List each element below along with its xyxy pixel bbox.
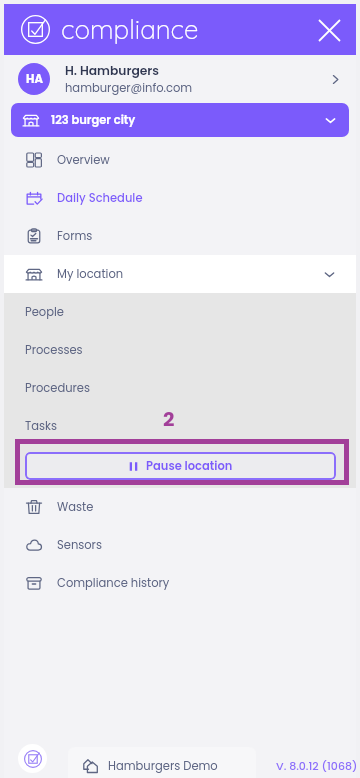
button[interactable]: My location — [4, 255, 356, 293]
staticText: Sensors — [57, 537, 102, 553]
staticText: Hamburgers Demo — [108, 758, 218, 774]
button[interactable]: Forms — [4, 217, 356, 255]
button[interactable]: People — [4, 293, 356, 331]
staticText: Overview — [57, 152, 110, 168]
staticText: HA — [26, 71, 43, 87]
button[interactable]: Close — [312, 13, 346, 47]
staticText: Processes — [25, 342, 83, 358]
staticText: Daily Schedule — [57, 190, 143, 206]
button[interactable]: Waste — [4, 488, 356, 526]
staticText: Pause location — [146, 458, 233, 474]
button[interactable]: Overview — [4, 141, 356, 179]
staticText: Procedures — [25, 380, 90, 396]
staticText: 123 burger city — [51, 112, 136, 128]
staticText: V. 8.0.12 (1068) — [276, 758, 358, 773]
staticText: Tasks — [25, 418, 57, 434]
button[interactable]: HA — [4, 55, 356, 103]
button[interactable]: Compliance app — [18, 744, 47, 773]
staticText: 2 — [163, 405, 175, 433]
button[interactable]: Daily Schedule — [4, 179, 356, 217]
button[interactable]: Pause location — [25, 452, 336, 480]
staticText: hamburger@info.com — [65, 80, 193, 96]
staticText: H. Hamburgers — [65, 62, 160, 79]
button[interactable]: Compliance history — [4, 564, 356, 602]
staticText: Waste — [57, 499, 94, 515]
button[interactable]: Sensors — [4, 526, 356, 564]
button[interactable]: Hamburgers Demo — [68, 747, 256, 778]
button[interactable]: 123 burger city — [11, 103, 349, 137]
staticText: Forms — [57, 228, 93, 244]
staticText: compliance — [61, 13, 199, 46]
button[interactable]: Procedures — [4, 369, 356, 407]
staticText: My location — [57, 266, 124, 282]
staticText: People — [25, 304, 64, 320]
button[interactable]: Processes — [4, 331, 356, 369]
button[interactable]: Tasks — [4, 407, 356, 445]
staticText: Compliance history — [57, 575, 170, 591]
